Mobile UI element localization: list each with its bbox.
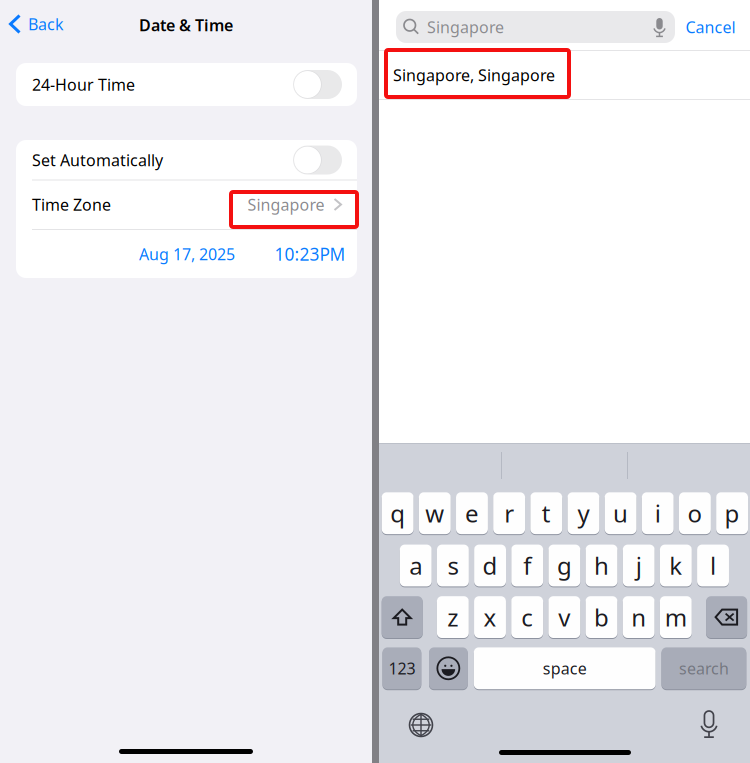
staticText: r bbox=[504, 497, 514, 529]
staticText: f bbox=[523, 550, 531, 581]
button[interactable]: Dictation bbox=[651, 18, 667, 37]
button[interactable]: j bbox=[623, 545, 655, 586]
button[interactable]: g bbox=[548, 545, 580, 586]
staticText: 24-Hour Time bbox=[32, 74, 135, 95]
staticText: j bbox=[636, 550, 642, 581]
staticText: o bbox=[687, 497, 702, 529]
button[interactable]: v bbox=[548, 596, 580, 638]
button[interactable]: p bbox=[716, 492, 748, 534]
staticText: 123 bbox=[388, 658, 415, 679]
button[interactable]: y bbox=[567, 492, 599, 534]
button[interactable]: k bbox=[660, 545, 692, 586]
button[interactable]: Dictation bbox=[698, 711, 720, 738]
button[interactable]: h bbox=[586, 545, 617, 586]
button[interactable]: 10:23PM bbox=[266, 242, 353, 265]
staticText: Set Automatically bbox=[32, 149, 163, 171]
staticText: l bbox=[710, 550, 716, 581]
button[interactable]: d bbox=[474, 545, 506, 586]
button[interactable]: o bbox=[679, 492, 711, 534]
staticText: s bbox=[447, 550, 458, 581]
button[interactable]: e bbox=[456, 492, 488, 534]
staticText: Singapore, Singapore bbox=[393, 64, 555, 86]
button[interactable]: search bbox=[661, 647, 746, 689]
button[interactable]: Aug 17, 2025 bbox=[131, 243, 243, 265]
button[interactable]: c bbox=[511, 596, 543, 638]
staticText: m bbox=[665, 601, 687, 633]
staticText: q bbox=[390, 497, 405, 529]
staticText: y bbox=[577, 497, 589, 529]
button[interactable]: t bbox=[530, 492, 562, 534]
button[interactable]: Singapore bbox=[247, 194, 342, 215]
staticText: 10:23PM bbox=[274, 242, 345, 265]
staticText: space bbox=[543, 658, 587, 679]
button[interactable]: n bbox=[623, 596, 655, 638]
button[interactable]: f bbox=[511, 545, 543, 586]
staticText: Date & Time bbox=[139, 14, 233, 36]
staticText: z bbox=[447, 601, 458, 633]
button[interactable]: Next keyboard bbox=[409, 713, 432, 736]
button[interactable]: s bbox=[437, 545, 469, 586]
staticText: w bbox=[425, 497, 444, 529]
button[interactable]: a bbox=[400, 545, 432, 586]
button[interactable]: Singapore bbox=[396, 16, 675, 38]
staticText: Cancel bbox=[685, 16, 735, 38]
staticText: x bbox=[483, 601, 496, 633]
staticText: g bbox=[557, 550, 572, 581]
staticText: a bbox=[409, 550, 422, 581]
button[interactable]: w bbox=[419, 492, 451, 534]
button[interactable]: Shift bbox=[382, 596, 423, 638]
staticText: k bbox=[669, 550, 682, 581]
button[interactable]: i bbox=[642, 492, 674, 534]
button[interactable]: u bbox=[605, 492, 637, 534]
staticText: n bbox=[631, 601, 646, 633]
staticText: Aug 17, 2025 bbox=[139, 243, 235, 265]
staticText: i bbox=[655, 497, 661, 529]
staticText: Singapore bbox=[427, 16, 504, 38]
staticText: t bbox=[542, 497, 551, 529]
button[interactable]: l bbox=[697, 545, 729, 586]
button[interactable]: Cancel bbox=[677, 16, 750, 38]
staticText: v bbox=[558, 601, 570, 633]
button[interactable]: q bbox=[382, 492, 414, 534]
staticText: Singapore bbox=[247, 194, 324, 215]
button[interactable]: Singapore, Singapore bbox=[379, 64, 750, 86]
staticText: e bbox=[465, 497, 479, 529]
staticText: c bbox=[521, 601, 533, 633]
button[interactable]: b bbox=[585, 596, 617, 638]
staticText: d bbox=[483, 550, 498, 581]
staticText: Back bbox=[28, 13, 64, 35]
staticText: h bbox=[594, 550, 609, 581]
button[interactable]: r bbox=[493, 492, 525, 534]
staticText: search bbox=[679, 658, 729, 679]
button[interactable]: Back bbox=[0, 13, 140, 35]
button[interactable]: Emoji bbox=[429, 647, 468, 689]
button[interactable]: space bbox=[474, 647, 656, 689]
staticText: p bbox=[725, 497, 740, 529]
staticText: u bbox=[613, 497, 628, 529]
button[interactable]: z bbox=[437, 596, 469, 638]
staticText: b bbox=[594, 601, 609, 633]
button[interactable]: x bbox=[474, 596, 506, 638]
button[interactable]: Delete bbox=[706, 596, 747, 638]
staticText: Time Zone bbox=[32, 194, 111, 215]
button[interactable]: m bbox=[660, 596, 692, 638]
button[interactable]: 123 bbox=[382, 647, 421, 689]
